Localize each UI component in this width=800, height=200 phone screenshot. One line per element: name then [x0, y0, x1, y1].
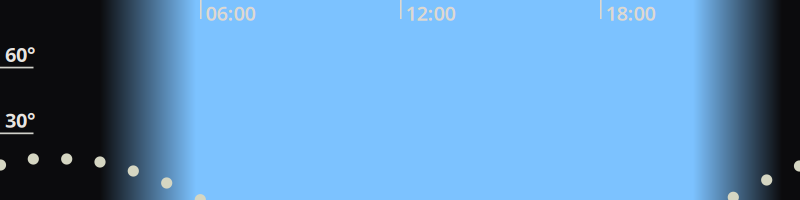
- staticText: 30°: [5, 107, 35, 133]
- staticText: 18:00: [605, 0, 655, 26]
- staticText: 60°: [5, 41, 35, 68]
- staticText: 12:00: [405, 0, 455, 26]
- staticText: 06:00: [205, 0, 255, 26]
